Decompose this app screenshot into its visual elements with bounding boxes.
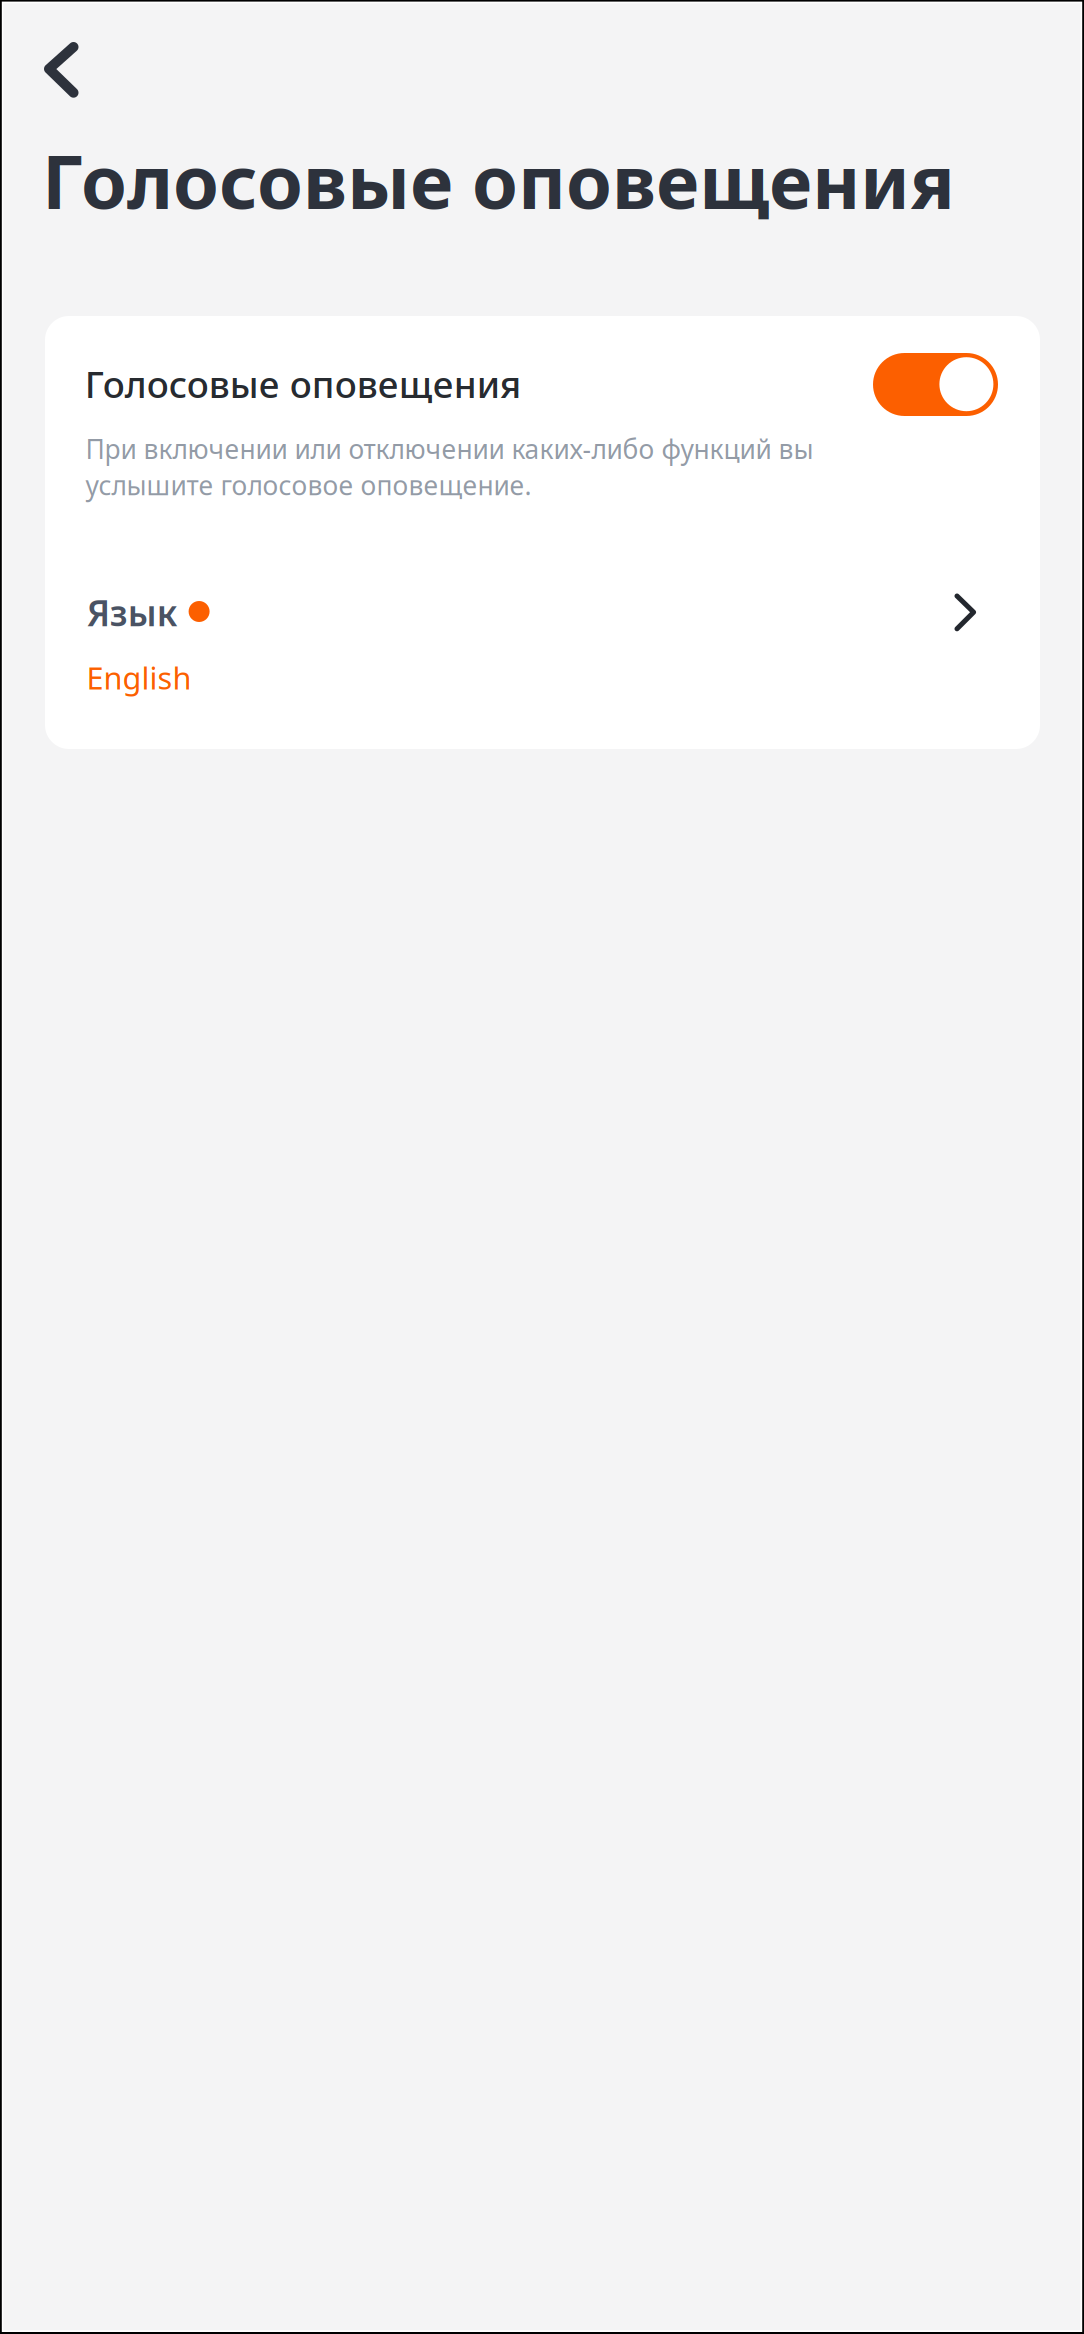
button[interactable]: Язык [45,567,1040,749]
staticText: При включении или отключении каких-либо … [85,431,813,467]
button[interactable]: Голосовые оповещения [45,316,1040,432]
staticText: услышите голосовое оповещение. [85,467,531,503]
staticText: Голосовые оповещения [42,130,955,231]
staticText: Язык [87,589,178,637]
staticText: Голосовые оповещения [85,359,521,409]
button[interactable]: Назад [30,24,114,116]
staticText: English [86,657,191,698]
